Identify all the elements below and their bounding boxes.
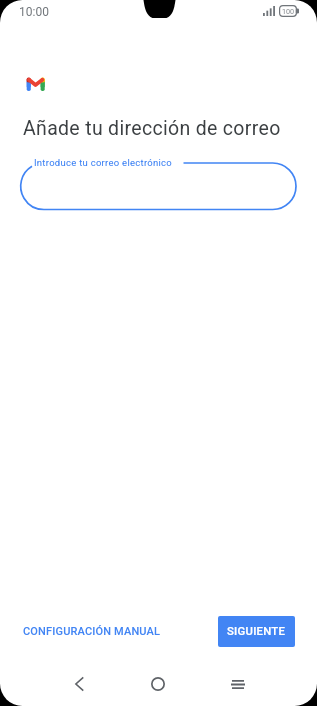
button[interactable]: Recent apps: [216, 662, 260, 706]
staticText: CONFIGURACIÓN MANUAL: [23, 625, 161, 638]
button[interactable]: Home: [136, 662, 180, 706]
staticText: SIGUIENTE: [227, 625, 286, 638]
button[interactable]: SIGUIENTE: [218, 616, 295, 647]
staticText: 100: [282, 7, 295, 15]
staticText: Añade tu dirección de correo: [23, 117, 281, 140]
staticText: 10:00: [19, 5, 49, 19]
button[interactable]: Back: [57, 662, 101, 706]
staticText: Introduce tu correo electrónico: [34, 157, 173, 168]
button[interactable]: Introduce tu correo electrónico: [0, 0, 317, 706]
button[interactable]: CONFIGURACIÓN MANUAL: [14, 617, 170, 646]
